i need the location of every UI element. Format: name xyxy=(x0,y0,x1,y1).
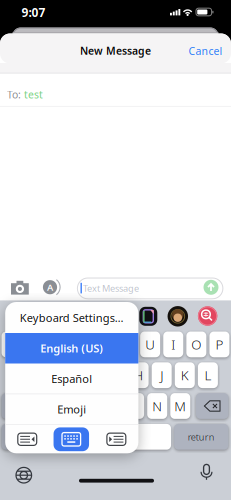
staticText: K xyxy=(181,366,189,384)
button[interactable]: X xyxy=(55,393,75,419)
button[interactable]: Camera xyxy=(9,278,31,298)
button[interactable]: Cancel xyxy=(162,44,222,58)
button[interactable]: Space xyxy=(36,424,171,450)
button[interactable]: W xyxy=(25,331,45,357)
staticText: Español xyxy=(51,371,92,386)
button[interactable]: J xyxy=(152,362,172,388)
staticText: N xyxy=(152,397,162,415)
button[interactable]: H xyxy=(129,362,149,388)
button[interactable]: C xyxy=(78,393,98,419)
button[interactable]: Dictation xyxy=(199,463,213,481)
staticText: New Message xyxy=(80,44,151,58)
staticText: J xyxy=(160,366,163,384)
staticText: X xyxy=(61,397,68,415)
staticText: E xyxy=(54,335,61,353)
button[interactable]: B xyxy=(124,393,144,419)
staticText: D xyxy=(65,366,74,384)
staticText: Emoji xyxy=(57,402,86,417)
button[interactable]: A xyxy=(13,362,33,388)
staticText: I xyxy=(171,335,175,353)
button[interactable]: Y xyxy=(117,331,137,357)
button[interactable]: Emoji xyxy=(5,394,138,424)
staticText: A xyxy=(47,281,53,293)
button[interactable]: M xyxy=(170,393,190,419)
button[interactable]: Photos app xyxy=(139,307,157,326)
button[interactable]: Español xyxy=(5,363,138,394)
button[interactable]: Keyboard Settings… xyxy=(5,302,138,333)
staticText: U xyxy=(145,335,155,353)
staticText: To: xyxy=(7,87,21,102)
button[interactable]: English (US) xyxy=(5,333,138,363)
button[interactable]: Memoji Stickers xyxy=(168,306,188,327)
button[interactable]: P xyxy=(209,331,229,357)
staticText: Keyboard Settings… xyxy=(20,310,124,325)
button[interactable]: N xyxy=(147,393,167,419)
button[interactable]: Next keyboard xyxy=(15,466,33,484)
button[interactable]: D xyxy=(59,362,79,388)
button[interactable]: U xyxy=(140,331,160,357)
staticText: P xyxy=(215,335,223,353)
staticText: M xyxy=(174,397,186,415)
button[interactable]: G xyxy=(105,362,125,388)
button[interactable]: Shift xyxy=(2,393,29,419)
button[interactable]: Apps xyxy=(41,280,59,294)
staticText: H xyxy=(134,366,144,384)
staticText: Cancel xyxy=(188,44,222,58)
button[interactable]: K xyxy=(175,362,195,388)
button[interactable]: Right one-handed keyboard xyxy=(107,433,126,445)
button[interactable]: I xyxy=(163,331,183,357)
button[interactable]: L xyxy=(198,362,218,388)
staticText: 9:07 xyxy=(21,4,45,20)
staticText: O xyxy=(191,335,201,353)
staticText: F xyxy=(89,366,96,384)
button[interactable]: T xyxy=(94,331,114,357)
staticText: T xyxy=(100,335,107,353)
staticText: 123 xyxy=(10,430,25,443)
button[interactable]: Search images xyxy=(197,306,218,326)
button[interactable]: 123 xyxy=(2,424,33,450)
button[interactable]: E xyxy=(48,331,68,357)
button[interactable]: R xyxy=(71,331,91,357)
staticText: R xyxy=(77,335,85,353)
staticText: Text Message xyxy=(83,282,139,294)
button[interactable]: Q xyxy=(2,331,22,357)
staticText: English (US) xyxy=(40,341,103,356)
button[interactable]: S xyxy=(36,362,56,388)
button[interactable]: F xyxy=(82,362,102,388)
button[interactable]: return xyxy=(174,424,228,450)
staticText: return xyxy=(188,430,215,443)
button[interactable]: Send xyxy=(203,280,218,295)
button[interactable]: O xyxy=(186,331,206,357)
button[interactable]: Full keyboard xyxy=(53,427,89,451)
staticText: L xyxy=(204,366,211,384)
staticText: C xyxy=(84,397,92,415)
staticText: test xyxy=(24,87,43,102)
button[interactable]: Left one-handed keyboard xyxy=(18,433,37,445)
button[interactable]: Delete xyxy=(196,393,228,419)
